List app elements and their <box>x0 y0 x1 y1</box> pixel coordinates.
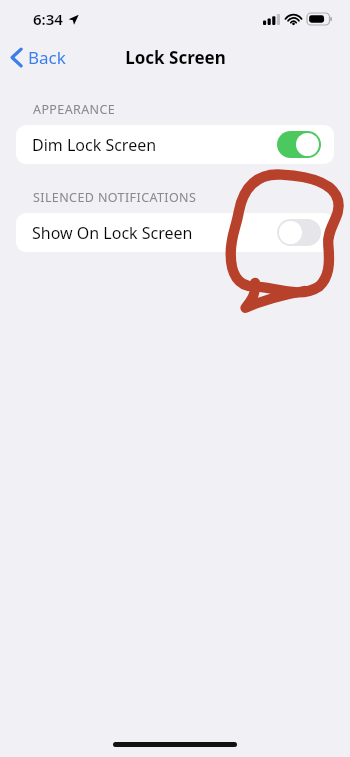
staticText: Back <box>28 46 66 69</box>
button[interactable]: Dim Lock Screen <box>16 125 334 164</box>
staticText: 6:34 <box>33 9 63 29</box>
button[interactable]: Toggle off <box>277 219 321 246</box>
button[interactable]: Back <box>0 42 76 73</box>
button[interactable]: Toggle on <box>277 131 321 158</box>
button[interactable]: Show On Lock Screen <box>16 213 334 252</box>
staticText: SILENCED NOTIFICATIONS <box>33 189 197 206</box>
staticText: Dim Lock Screen <box>32 134 277 156</box>
staticText: APPEARANCE <box>33 101 116 118</box>
staticText: Lock Screen <box>125 46 226 69</box>
staticText: Show On Lock Screen <box>32 222 277 244</box>
